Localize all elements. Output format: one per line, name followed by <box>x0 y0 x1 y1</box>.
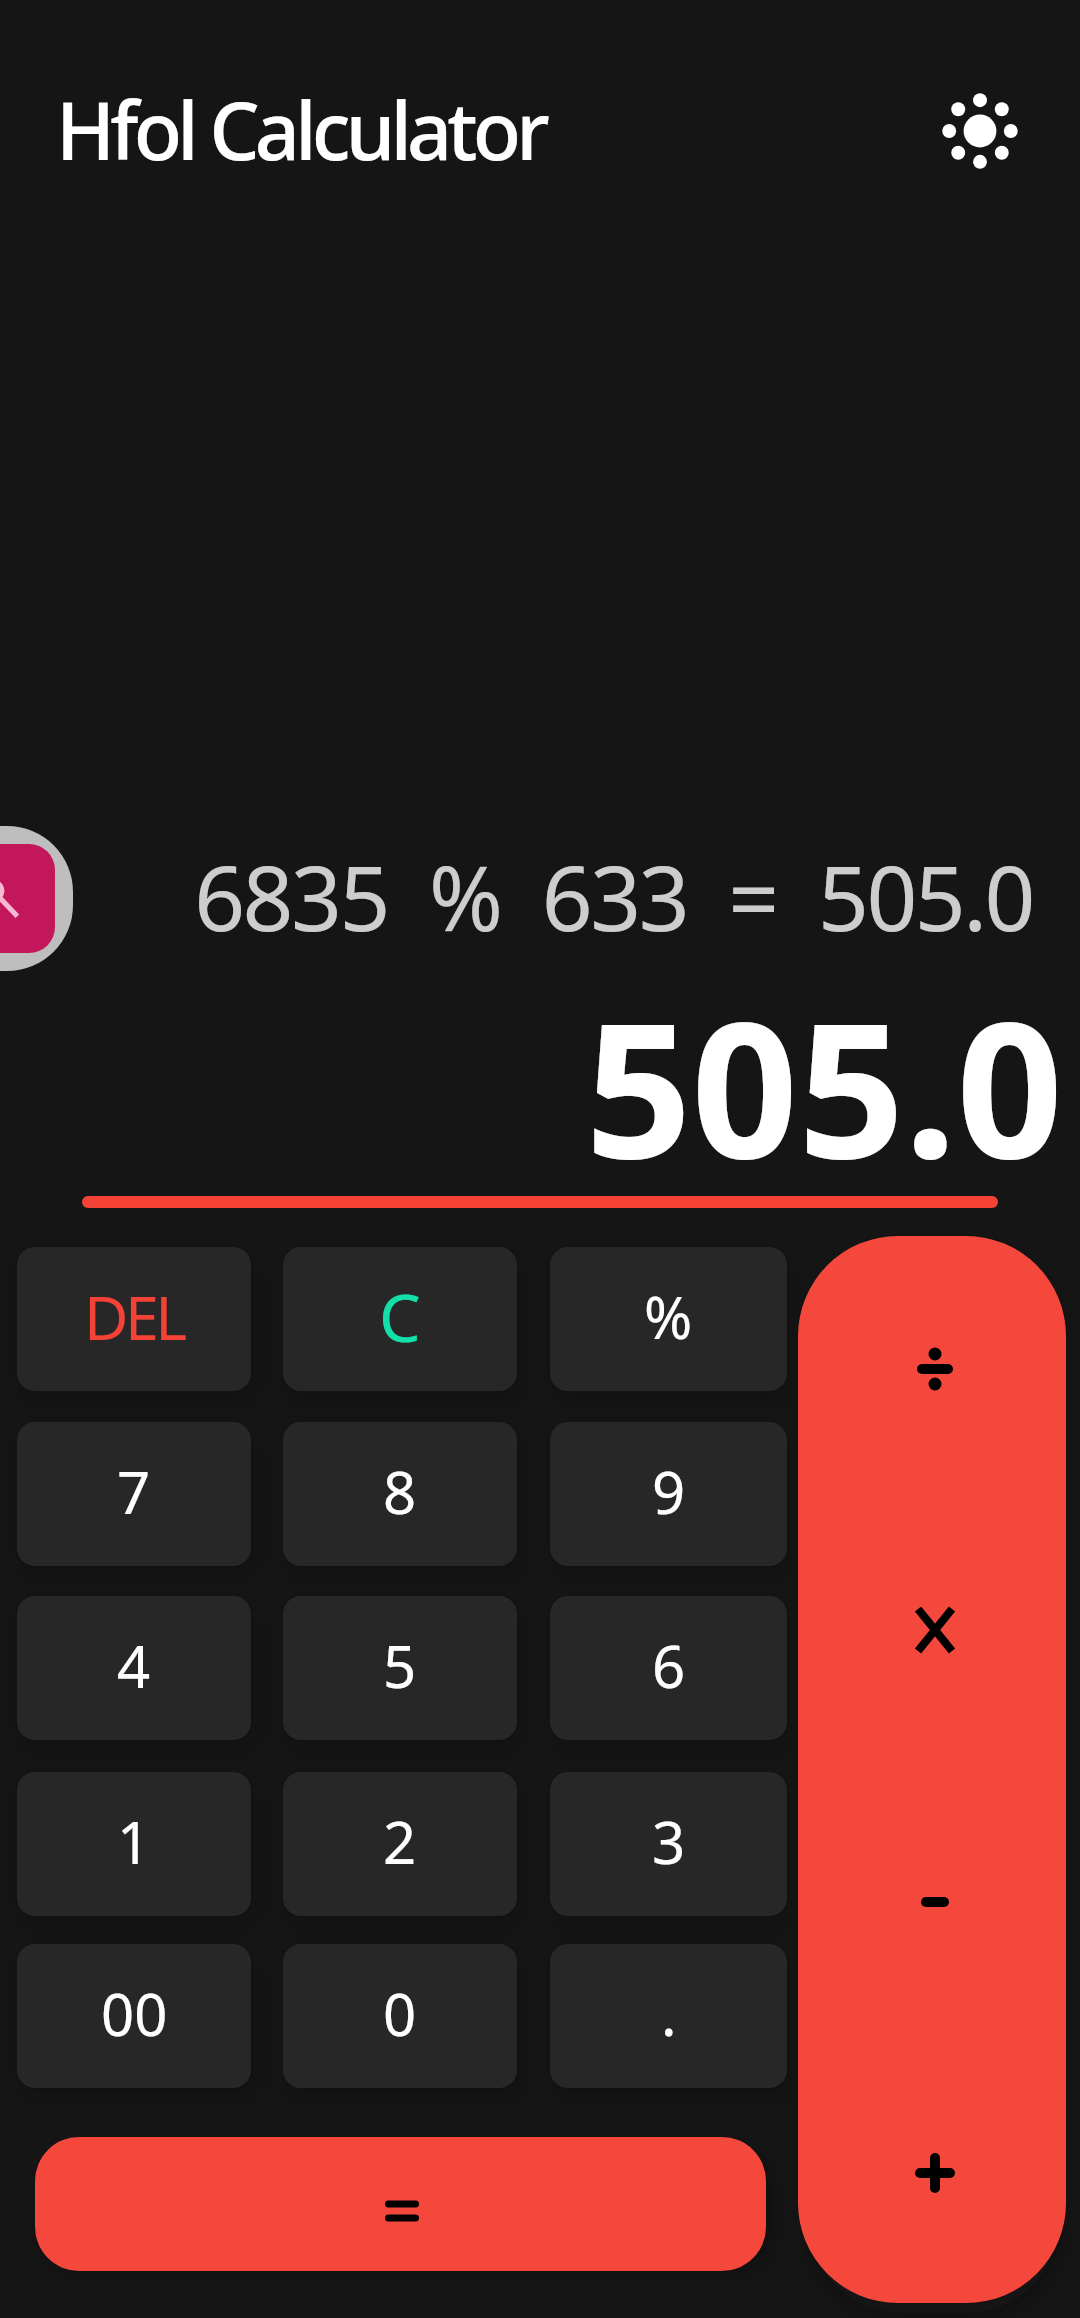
staticText: 00 <box>101 1974 168 2053</box>
staticText: 505.0 <box>0 959 1063 1212</box>
staticText: 1 <box>117 1802 151 1881</box>
staticText: 2 <box>383 1802 417 1881</box>
button[interactable]: 1 <box>17 1772 251 1916</box>
button[interactable]: Divide <box>798 1236 1066 1502</box>
button[interactable]: 8 <box>283 1422 517 1566</box>
button[interactable]: Hfol Calculator <box>30 60 590 200</box>
button[interactable]: Subtract <box>798 1769 1066 2035</box>
staticText: 7 <box>117 1452 151 1531</box>
staticText: DEL <box>84 1275 184 1358</box>
button[interactable]: Multiply <box>798 1497 1066 1763</box>
button[interactable]: Add <box>798 2040 1066 2303</box>
staticText: 5 <box>383 1626 417 1705</box>
button[interactable]: Equals <box>35 2137 766 2271</box>
button[interactable]: 00 <box>17 1944 251 2088</box>
staticText: 8 <box>383 1452 417 1531</box>
button[interactable]: Toggle brightness <box>910 61 1050 201</box>
button[interactable]: 9 <box>550 1422 787 1566</box>
button[interactable]: DEL <box>17 1247 251 1391</box>
button[interactable]: Search assistant <box>0 826 73 971</box>
staticText: % <box>644 1277 693 1356</box>
staticText: 4 <box>117 1626 151 1705</box>
button[interactable]: C <box>283 1247 517 1391</box>
staticText: 3 <box>652 1802 686 1881</box>
button[interactable]: 0 <box>283 1944 517 2088</box>
staticText: 6 <box>652 1626 686 1705</box>
button[interactable]: . <box>550 1944 787 2088</box>
button[interactable]: 7 <box>17 1422 251 1566</box>
staticText: Hfol Calculator <box>56 76 545 184</box>
button[interactable]: 3 <box>550 1772 787 1916</box>
staticText: . <box>661 1974 677 2053</box>
staticText: 6835 % 633 = 505.0 <box>0 836 1033 957</box>
button[interactable]: 2 <box>283 1772 517 1916</box>
staticText: 0 <box>383 1974 417 2053</box>
button[interactable]: 5 <box>283 1596 517 1740</box>
button[interactable]: 6 <box>550 1596 787 1740</box>
staticText: 9 <box>652 1452 686 1531</box>
staticText: C <box>379 1271 421 1361</box>
button[interactable]: 4 <box>17 1596 251 1740</box>
button[interactable]: % <box>550 1247 787 1391</box>
